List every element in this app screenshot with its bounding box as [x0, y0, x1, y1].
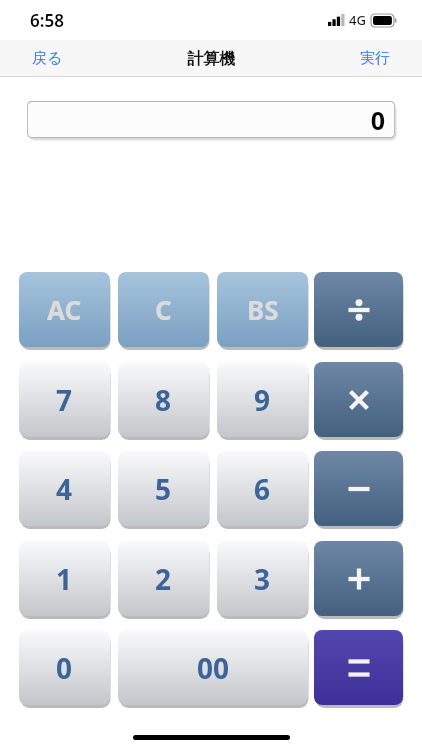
- button[interactable]: Multiply: [314, 362, 403, 437]
- button[interactable]: 7: [19, 362, 110, 437]
- button[interactable]: 00: [118, 630, 308, 705]
- staticText: 計算機: [187, 49, 235, 69]
- staticText: 8: [155, 381, 172, 419]
- button[interactable]: 4: [19, 451, 110, 526]
- staticText: 4: [56, 470, 73, 508]
- staticText: 0: [56, 649, 73, 687]
- button[interactable]: Add: [314, 541, 403, 616]
- button[interactable]: 3: [217, 541, 308, 616]
- button[interactable]: Equals: [314, 630, 403, 705]
- staticText: 0: [370, 103, 385, 137]
- staticText: 7: [56, 381, 73, 419]
- button[interactable]: 5: [118, 451, 209, 526]
- button[interactable]: 8: [118, 362, 209, 437]
- button[interactable]: 戻る: [24, 43, 71, 74]
- staticText: 3: [254, 560, 271, 598]
- staticText: 9: [254, 381, 271, 419]
- staticText: 00: [197, 649, 230, 687]
- staticText: 実行: [360, 49, 390, 68]
- staticText: 1: [56, 560, 73, 598]
- button[interactable]: Subtract: [314, 451, 403, 526]
- staticText: BS: [247, 292, 279, 327]
- button[interactable]: 6: [217, 451, 308, 526]
- staticText: 5: [155, 470, 172, 508]
- staticText: AC: [47, 292, 82, 327]
- button[interactable]: 0: [19, 630, 110, 705]
- button[interactable]: AC: [19, 272, 110, 347]
- button[interactable]: 1: [19, 541, 110, 616]
- button[interactable]: 0: [27, 101, 395, 138]
- button[interactable]: Divide: [314, 272, 403, 347]
- staticText: 2: [155, 560, 172, 598]
- button[interactable]: 2: [118, 541, 209, 616]
- button[interactable]: 9: [217, 362, 308, 437]
- staticText: C: [155, 292, 172, 327]
- staticText: 6:58: [30, 9, 64, 32]
- staticText: 戻る: [32, 49, 63, 68]
- staticText: 6: [254, 470, 271, 508]
- button[interactable]: 実行: [352, 43, 398, 74]
- staticText: 4G: [349, 11, 366, 29]
- button[interactable]: C: [118, 272, 209, 347]
- button[interactable]: BS: [217, 272, 308, 347]
